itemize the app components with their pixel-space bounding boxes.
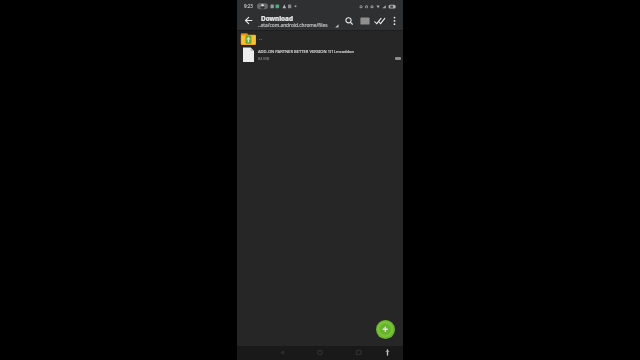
button[interactable]	[376, 320, 395, 339]
button[interactable]	[373, 14, 387, 28]
staticText: 84 MB	[258, 56, 270, 61]
button[interactable]: ..	[237, 31, 403, 46]
staticText: ..	[259, 34, 262, 41]
staticText: ..ata/com.android.chrome/files	[258, 22, 328, 29]
staticText: Download	[261, 14, 293, 23]
staticText: 9:23	[244, 3, 253, 9]
button[interactable]	[240, 13, 255, 28]
button[interactable]	[388, 14, 401, 28]
staticText: ADD-ON PARTNER BETTER VERSION 1(1).mcadd…	[258, 49, 355, 55]
button[interactable]	[358, 14, 372, 28]
button[interactable]	[342, 14, 356, 28]
button[interactable]: ADD-ON PARTNER BETTER VERSION 1(1).mcadd…	[237, 46, 403, 64]
